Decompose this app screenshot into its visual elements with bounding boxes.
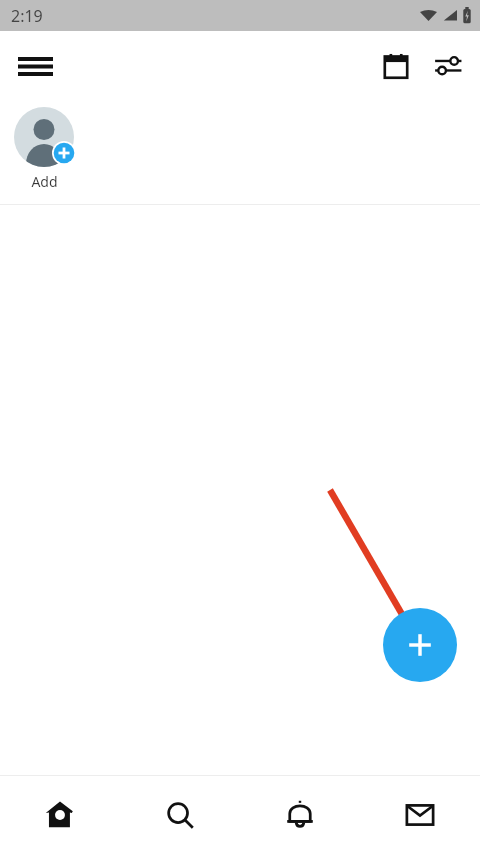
button[interactable]: Search	[120, 776, 240, 853]
button[interactable]: Menu	[8, 39, 62, 93]
button[interactable]: Calendar	[370, 40, 422, 92]
button[interactable]: Settings	[422, 40, 474, 92]
button[interactable]: Add	[10, 107, 78, 191]
staticText: Add	[31, 172, 58, 191]
staticText: 2:19	[11, 5, 43, 27]
button[interactable]: Notifications	[240, 776, 360, 853]
button[interactable]: Compose	[383, 608, 457, 682]
button[interactable]: Home	[0, 776, 120, 853]
button[interactable]: Messages	[360, 776, 480, 853]
